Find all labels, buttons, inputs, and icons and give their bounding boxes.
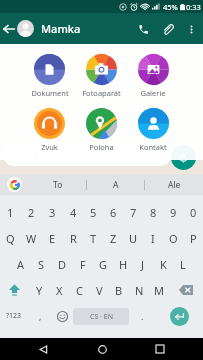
- button[interactable]: Kontakt: [127, 108, 179, 152]
- staticText: Poloha: [89, 142, 114, 152]
- button[interactable]: Fotoaparát: [75, 54, 127, 98]
- button[interactable]: Poloha: [75, 108, 127, 152]
- button[interactable]: W: [21, 225, 42, 251]
- staticText: Fotoaparát: [82, 88, 121, 98]
- button[interactable]: Galerie: [127, 54, 179, 98]
- button[interactable]: ?123: [0, 303, 28, 329]
- button[interactable]: P: [183, 225, 203, 251]
- staticText: 9: [170, 205, 177, 220]
- button[interactable]: Voice message: [171, 145, 196, 170]
- staticText: S: [38, 257, 45, 272]
- staticText: V: [96, 283, 103, 298]
- button[interactable]: To: [28, 174, 87, 195]
- button[interactable]: Call: [132, 18, 154, 40]
- button[interactable]: 0: [183, 199, 203, 225]
- button[interactable]: A: [87, 174, 145, 195]
- button[interactable]: R: [63, 225, 83, 251]
- staticText: H: [119, 257, 128, 272]
- button[interactable]: Back: [1, 21, 17, 37]
- button[interactable]: G: [93, 251, 113, 277]
- staticText: A: [17, 257, 25, 272]
- staticText: Z: [110, 231, 117, 246]
- staticText: To: [53, 179, 63, 191]
- button[interactable]: CS · EN: [73, 308, 129, 325]
- button[interactable]: Back: [28, 338, 58, 360]
- button[interactable]: A: [10, 251, 31, 277]
- staticText: 5: [90, 205, 97, 220]
- button[interactable]: N: [129, 277, 149, 303]
- button[interactable]: Backspace: [169, 277, 203, 303]
- staticText: 45%: [163, 2, 178, 12]
- button[interactable]: [3, 143, 171, 166]
- button[interactable]: U: [123, 225, 143, 251]
- button[interactable]: S: [31, 251, 52, 277]
- staticText: 3: [49, 205, 56, 220]
- button[interactable]: H: [113, 251, 133, 277]
- staticText: ?123: [6, 311, 22, 321]
- button[interactable]: 5: [83, 199, 103, 225]
- button[interactable]: V: [89, 277, 109, 303]
- button[interactable]: T: [83, 225, 103, 251]
- staticText: R: [70, 231, 77, 246]
- staticText: D: [58, 257, 67, 272]
- staticText: M: [154, 283, 164, 298]
- button[interactable]: 2: [21, 199, 42, 225]
- button[interactable]: 8: [143, 199, 163, 225]
- button[interactable]: Recents: [145, 338, 175, 360]
- staticText: Zvuk: [41, 142, 58, 152]
- button[interactable]: .: [130, 303, 155, 329]
- staticText: J: [141, 257, 145, 272]
- staticText: Mamka: [41, 21, 81, 36]
- button[interactable]: D: [52, 251, 73, 277]
- button[interactable]: Ale: [145, 174, 203, 195]
- button[interactable]: Q: [0, 225, 21, 251]
- button[interactable]: ,: [28, 303, 53, 329]
- button[interactable]: More options: [182, 20, 200, 38]
- staticText: Ale: [168, 179, 181, 191]
- button[interactable]: 3: [42, 199, 63, 225]
- staticText: 6: [110, 205, 117, 220]
- button[interactable]: 4: [63, 199, 83, 225]
- button[interactable]: 6: [103, 199, 123, 225]
- button[interactable]: I: [143, 225, 163, 251]
- button[interactable]: J: [133, 251, 153, 277]
- button[interactable]: K: [153, 251, 173, 277]
- staticText: U: [129, 231, 138, 246]
- staticText: B: [115, 283, 123, 298]
- staticText: N: [135, 283, 144, 298]
- staticText: G: [99, 257, 108, 272]
- button[interactable]: Zvuk: [24, 108, 75, 152]
- button[interactable]: X: [49, 277, 69, 303]
- button[interactable]: Y: [29, 277, 49, 303]
- staticText: O: [169, 231, 178, 246]
- button[interactable]: Home: [87, 338, 117, 360]
- staticText: 1: [7, 205, 14, 220]
- button[interactable]: Emoji: [53, 303, 72, 329]
- staticText: K: [160, 257, 167, 272]
- button[interactable]: Shift: [0, 277, 29, 303]
- button[interactable]: E: [42, 225, 63, 251]
- staticText: 0: [190, 205, 197, 220]
- button[interactable]: 9: [163, 199, 183, 225]
- button[interactable]: 7: [123, 199, 143, 225]
- staticText: ,: [39, 310, 42, 322]
- button[interactable]: 1: [0, 199, 21, 225]
- button[interactable]: Contact photo: [17, 20, 34, 37]
- button[interactable]: Google search: [0, 174, 28, 195]
- staticText: Kontakt: [139, 142, 167, 152]
- button[interactable]: O: [163, 225, 183, 251]
- staticText: P: [190, 231, 197, 246]
- staticText: 0:33: [186, 2, 201, 12]
- staticText: 8: [150, 205, 157, 220]
- button[interactable]: L: [173, 251, 193, 277]
- staticText: Dokument: [31, 88, 69, 98]
- button[interactable]: Enter: [155, 303, 203, 329]
- button[interactable]: F: [73, 251, 93, 277]
- button[interactable]: Dokument: [24, 54, 75, 98]
- button[interactable]: C: [69, 277, 89, 303]
- staticText: .: [141, 310, 144, 322]
- button[interactable]: B: [109, 277, 129, 303]
- button[interactable]: M: [149, 277, 169, 303]
- button[interactable]: Attach: [157, 18, 179, 40]
- button[interactable]: Z: [103, 225, 123, 251]
